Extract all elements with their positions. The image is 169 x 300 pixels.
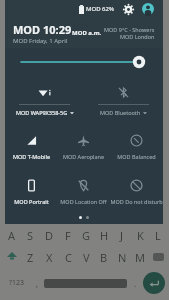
staticText: J [120, 228, 124, 243]
staticText: MOD 62% [86, 5, 114, 13]
button[interactable] [149, 246, 167, 268]
staticText: MOD Do not disturb [110, 198, 163, 205]
button[interactable]: MOD WAP9X358-5G [5, 80, 84, 126]
staticText: S [27, 228, 34, 243]
staticText: . [134, 278, 137, 289]
button[interactable]: Enter [143, 272, 165, 294]
button[interactable]: MOD Aeroplane mode [57, 126, 110, 171]
button[interactable]: MOD Portrait [5, 171, 57, 216]
button[interactable]: MOD Balanced [110, 126, 163, 171]
button[interactable]: M [131, 246, 149, 268]
button[interactable]: A [2, 224, 21, 246]
button[interactable]: MOD Location Off [57, 171, 110, 216]
staticText: , [36, 278, 39, 289]
staticText: MOD 9°C - Showers [104, 26, 155, 33]
button[interactable]: MOD T-Mobile [5, 126, 57, 171]
button[interactable]: C [59, 246, 77, 268]
staticText: Z [27, 250, 34, 265]
button[interactable]: J [113, 224, 131, 246]
staticText: A [8, 228, 16, 243]
staticText: G [82, 228, 91, 243]
button[interactable]: N [113, 246, 131, 268]
button[interactable] [2, 246, 21, 268]
button[interactable]: MOD Do not disturb [110, 171, 163, 216]
staticText: K [137, 228, 144, 243]
staticText: MOD Bluetooth [100, 109, 141, 116]
button[interactable]: MOD 10:29 [13, 22, 104, 45]
button[interactable]: Settings [121, 2, 135, 16]
staticText: D [45, 228, 54, 243]
button[interactable]: B [95, 246, 113, 268]
staticText: F [65, 228, 71, 243]
button[interactable]: V [77, 246, 95, 268]
staticText: B [100, 250, 108, 265]
button[interactable]: ?123 [4, 268, 30, 298]
button[interactable]: MOD 9°C - Showers [104, 26, 155, 40]
button[interactable]: H [95, 224, 113, 246]
staticText: MOD WAP9X358-5G [16, 109, 68, 116]
staticText: M [135, 250, 145, 265]
staticText: MOD Aeroplane mode [57, 153, 110, 160]
button[interactable]: K [131, 224, 149, 246]
button[interactable]: User [141, 2, 155, 16]
button[interactable]: Brightness [21, 48, 147, 76]
button[interactable]: S [21, 224, 40, 246]
button[interactable]: Z [21, 246, 40, 268]
button[interactable]: MOD Bluetooth [84, 80, 163, 126]
staticText: MOD Portrait [14, 198, 49, 205]
button[interactable]: G [77, 224, 95, 246]
button[interactable]: L [149, 224, 167, 246]
button[interactable]: X [40, 246, 59, 268]
staticText: ?123 [9, 278, 25, 288]
staticText: V [83, 250, 90, 265]
staticText: MOD 10:29 [13, 22, 72, 37]
staticText: H [100, 228, 109, 243]
staticText: C [65, 250, 72, 265]
staticText: MOD Location Off [60, 198, 107, 205]
staticText: L [155, 228, 161, 243]
staticText: MOD Balanced [117, 153, 156, 160]
staticText: MOD Friday, 1 April [13, 37, 68, 45]
staticText: X [46, 250, 53, 265]
button[interactable]: D [40, 224, 59, 246]
staticText: N [118, 250, 127, 265]
staticText: MOD T-Mobile [13, 153, 50, 160]
button[interactable]: F [59, 224, 77, 246]
staticText: MOD a.m. [72, 29, 102, 37]
staticText: MOD London [120, 33, 155, 40]
button[interactable]: Space [44, 279, 127, 288]
